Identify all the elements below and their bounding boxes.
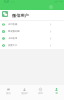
staticText: 朋友圈相册 [8,30,20,33]
button[interactable]: 朋友圈相册 [0,28,64,35]
staticText: 发现 [38,92,43,95]
button[interactable]: 我 [48,85,64,100]
staticText: 设置中心 [8,44,18,47]
staticText: 9:41 [4,0,10,3]
staticText: 卡包表情 [8,37,18,40]
button[interactable]: 微信用户 [0,10,64,20]
button[interactable]: 卡包表情 [0,35,64,42]
button[interactable]: 支付收藏 [0,21,64,28]
button[interactable]: 通讯录 [16,85,32,100]
staticText: 通讯录 [21,92,28,95]
button[interactable]: 微信 [0,85,16,100]
staticText: 微信 [6,92,11,95]
button[interactable]: 设置中心 [0,42,64,49]
button[interactable]: Add [49,5,53,9]
staticText: 支付收藏 [8,23,18,26]
staticText: 我 [55,92,58,95]
staticText: 微信用户 [12,13,29,18]
button[interactable]: 发现 [32,85,48,100]
